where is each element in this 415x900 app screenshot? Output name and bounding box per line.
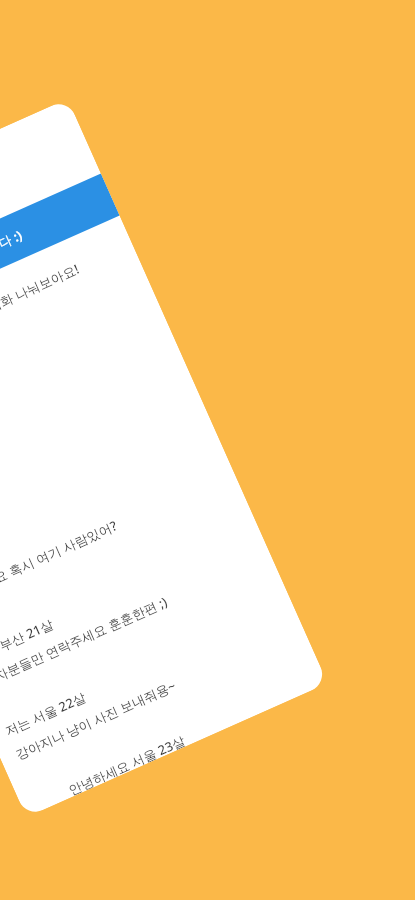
staticText: 오픈 채팅방에 오신것을 환영합니다 :) [0,226,25,330]
staticText: 강아지나 냥이 사진 보내줘용~ [13,676,179,763]
button[interactable]: Chat screenshot card [0,99,328,817]
staticText: 저는 부산 21살 [0,615,56,667]
staticText: 여자분들만 연락주세요 훈훈한편 ;) [0,593,170,690]
staticText: 저는 서울 22살 [2,688,89,740]
staticText: 안녕하세요 서울 23살 [66,731,187,797]
staticText: 여러분 반갑습니다! 즐거운 대화 나눠보아요! [0,260,82,380]
button[interactable]: 오픈 채팅방에 오신것을 환영합니다 :) [0,173,120,350]
staticText: 안녕하세요 혹시 여기 사람있어? [0,516,120,608]
